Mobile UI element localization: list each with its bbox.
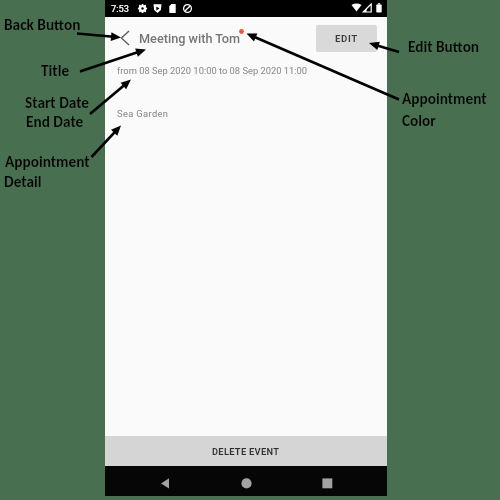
button[interactable] — [114, 28, 134, 48]
staticText: End Date — [26, 112, 84, 131]
staticText: Sea Garden — [117, 108, 169, 119]
button[interactable] — [322, 478, 333, 489]
button[interactable]: DELETE EVENT — [105, 436, 387, 466]
staticText: EDIT — [335, 33, 358, 44]
button[interactable] — [241, 478, 252, 489]
staticText: Color — [402, 111, 436, 130]
staticText: Edit Button — [408, 37, 480, 56]
staticText: Title — [41, 61, 70, 80]
staticText: Start Date — [25, 93, 90, 112]
staticText: 7:53 — [111, 3, 129, 14]
staticText: from 08 Sep 2020 10:00 to 08 Sep 2020 11… — [117, 65, 308, 76]
button[interactable]: EDIT — [316, 25, 377, 52]
button[interactable] — [159, 476, 171, 490]
staticText: Appointment — [402, 89, 487, 108]
staticText: Meeting with Tom — [139, 31, 241, 46]
staticText: Appointment — [5, 152, 90, 171]
staticText: Back Button — [4, 15, 81, 34]
staticText: Detail — [4, 172, 42, 191]
staticText: DELETE EVENT — [212, 446, 280, 457]
